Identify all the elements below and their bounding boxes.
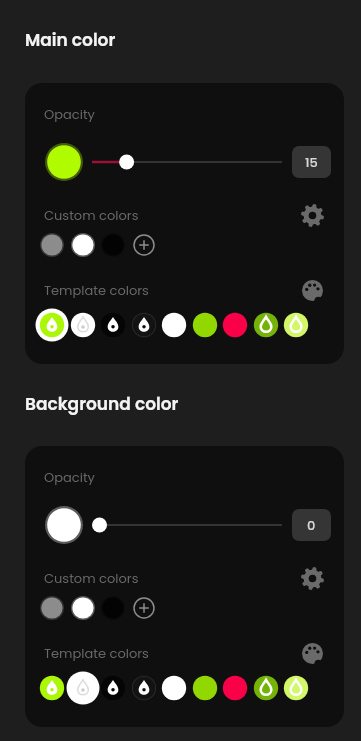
button[interactable]: Opacity slider	[92, 152, 282, 172]
staticText: Opacity	[44, 105, 95, 123]
staticText: 0	[307, 516, 316, 534]
button[interactable]: Template color	[96, 671, 130, 705]
staticText: Template colors	[44, 281, 149, 299]
button[interactable]: Template color	[188, 671, 222, 705]
button[interactable]: Template color	[127, 308, 161, 342]
staticText: 15	[305, 153, 318, 171]
button[interactable]: Custom color	[71, 596, 95, 620]
button[interactable]: Template color	[35, 671, 69, 705]
button[interactable]: Template color	[279, 671, 313, 705]
button[interactable]: Template color	[218, 308, 252, 342]
button[interactable]: Opacity slider	[92, 515, 282, 535]
button[interactable]: Settings	[299, 202, 325, 228]
button[interactable]: Selected color	[45, 506, 83, 544]
button[interactable]: Settings	[299, 565, 325, 591]
button[interactable]: Add color	[132, 596, 156, 620]
button[interactable]: Template color	[279, 308, 313, 342]
button[interactable]: Palette	[299, 640, 325, 666]
button[interactable]: Template color	[35, 308, 69, 342]
button[interactable]: Template color	[127, 671, 161, 705]
button[interactable]: Custom color	[101, 596, 125, 620]
button[interactable]: Template color	[66, 308, 100, 342]
button[interactable]: Custom color	[101, 233, 125, 257]
button[interactable]: Template color	[157, 308, 191, 342]
button[interactable]: Template color	[96, 308, 130, 342]
staticText: Custom colors	[44, 206, 139, 224]
button[interactable]: Template color	[249, 308, 283, 342]
button[interactable]: Custom color	[40, 233, 64, 257]
button[interactable]: Template color	[188, 308, 222, 342]
staticText: Main color	[25, 28, 116, 52]
button[interactable]: Template color	[157, 671, 191, 705]
button[interactable]: Custom color	[40, 596, 64, 620]
button[interactable]: Palette	[299, 277, 325, 303]
staticText: Custom colors	[44, 569, 139, 587]
staticText: Template colors	[44, 644, 149, 662]
button[interactable]: 0	[292, 509, 331, 541]
button[interactable]: Template color	[66, 671, 100, 705]
button[interactable]: Template color	[249, 671, 283, 705]
button[interactable]: Selected color	[45, 143, 83, 181]
staticText: Opacity	[44, 468, 95, 486]
button[interactable]: Add color	[132, 233, 156, 257]
staticText: Background color	[25, 392, 179, 416]
button[interactable]: 15	[292, 146, 331, 178]
button[interactable]: Template color	[218, 671, 252, 705]
button[interactable]: Custom color	[71, 233, 95, 257]
